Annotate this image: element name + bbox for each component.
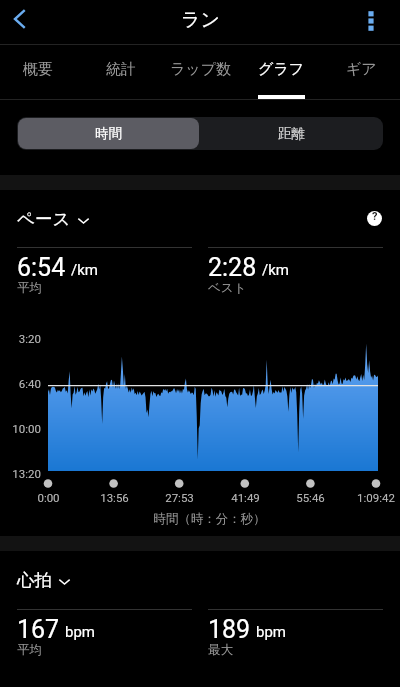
staticText: 距離 bbox=[278, 125, 305, 142]
staticText: 0:00 bbox=[37, 491, 60, 504]
button[interactable]: ギア bbox=[328, 45, 394, 99]
button[interactable]: 心拍 bbox=[17, 569, 71, 591]
staticText: 最大 bbox=[208, 642, 233, 658]
button[interactable]: グラフ bbox=[248, 45, 314, 99]
staticText: 10:00 bbox=[12, 422, 41, 435]
staticText: 189 bbox=[208, 615, 251, 644]
staticText: ペース bbox=[17, 208, 71, 230]
button[interactable]: Help bbox=[360, 204, 389, 233]
staticText: 時間（時：分：秒） bbox=[153, 511, 266, 527]
staticText: 3:20 bbox=[18, 332, 41, 345]
staticText: 1:09:42 bbox=[357, 491, 395, 504]
staticText: 6:54 bbox=[17, 253, 66, 282]
button[interactable]: 時間 bbox=[18, 118, 199, 149]
staticText: ラップ数 bbox=[170, 60, 232, 79]
staticText: 概要 bbox=[23, 60, 53, 79]
staticText: bpm bbox=[65, 623, 95, 641]
staticText: 心拍 bbox=[17, 569, 52, 591]
staticText: 平均 bbox=[17, 280, 42, 296]
staticText: ベスト bbox=[208, 280, 247, 296]
staticText: bpm bbox=[256, 623, 286, 641]
button[interactable]: 統計 bbox=[88, 45, 154, 99]
staticText: 41:49 bbox=[231, 491, 260, 504]
staticText: 13:20 bbox=[12, 467, 41, 480]
staticText: 6:40 bbox=[18, 377, 41, 390]
button[interactable]: 距離 bbox=[200, 117, 383, 150]
staticText: 時間 bbox=[95, 125, 122, 142]
button[interactable]: 概要 bbox=[5, 45, 71, 99]
staticText: 13:56 bbox=[100, 491, 129, 504]
staticText: /km bbox=[71, 261, 98, 279]
staticText: 55:46 bbox=[296, 491, 325, 504]
staticText: /km bbox=[262, 261, 289, 279]
staticText: 2:28 bbox=[208, 253, 257, 282]
staticText: ギア bbox=[346, 60, 377, 79]
button[interactable]: Back bbox=[0, 2, 40, 42]
button[interactable]: ラップ数 bbox=[161, 45, 241, 99]
button[interactable]: ペース bbox=[17, 208, 90, 230]
staticText: 167 bbox=[17, 615, 60, 644]
button[interactable]: More options bbox=[354, 5, 388, 39]
staticText: 27:53 bbox=[165, 491, 194, 504]
staticText: ラン bbox=[181, 8, 220, 32]
staticText: ? bbox=[372, 211, 378, 223]
staticText: 統計 bbox=[106, 60, 136, 79]
staticText: 平均 bbox=[17, 642, 42, 658]
staticText: グラフ bbox=[258, 60, 305, 79]
